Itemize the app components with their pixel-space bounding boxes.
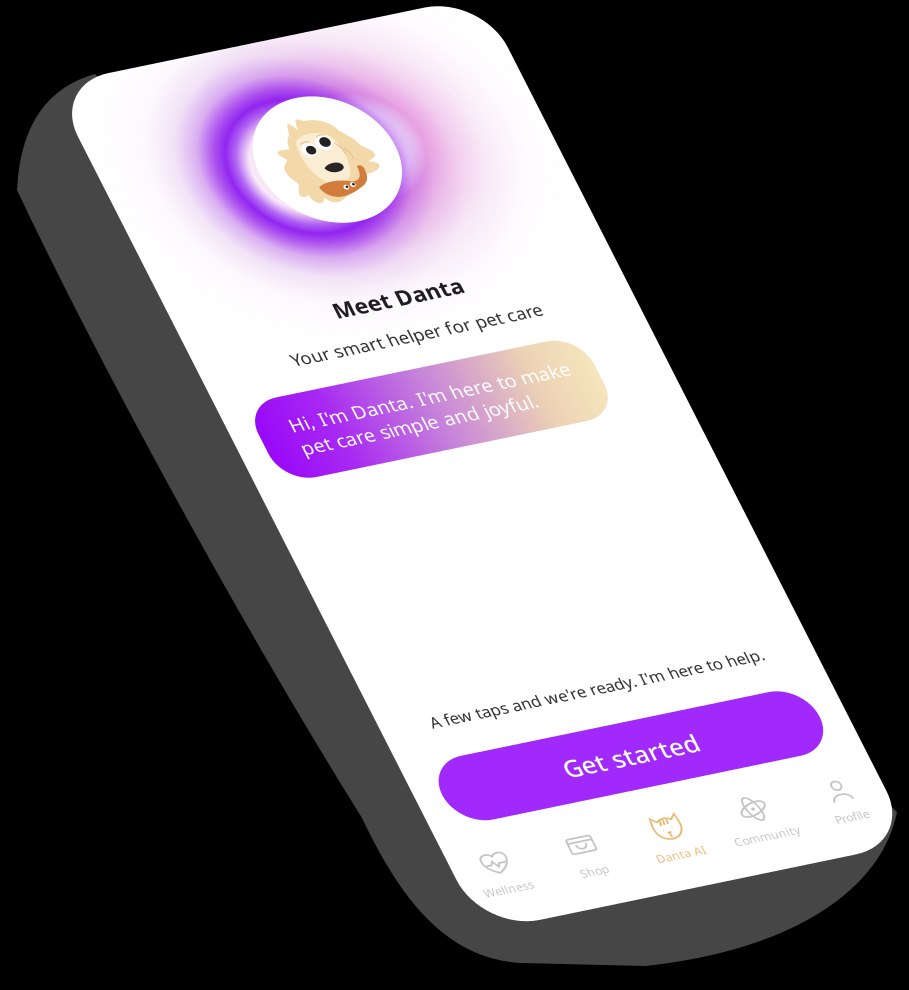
- staticText: Hi, I'm Danta. I'm here to make pet care…: [311, 413, 567, 459]
- staticText: Danta AI: [432, 881, 477, 895]
- staticText: Meet Danta: [395, 315, 513, 342]
- staticText: A few taps and we're ready. I'm here to …: [302, 711, 607, 731]
- staticText: Your smart helper for pet care: [340, 355, 569, 376]
- button[interactable]: Community: [494, 847, 572, 894]
- staticText: Get started: [393, 774, 516, 804]
- button[interactable]: Danta AI: [415, 847, 494, 895]
- button[interactable]: Shop: [337, 848, 415, 894]
- button[interactable]: Profile: [572, 849, 651, 893]
- button[interactable]: Get started: [282, 757, 627, 821]
- staticText: Community: [504, 880, 563, 894]
